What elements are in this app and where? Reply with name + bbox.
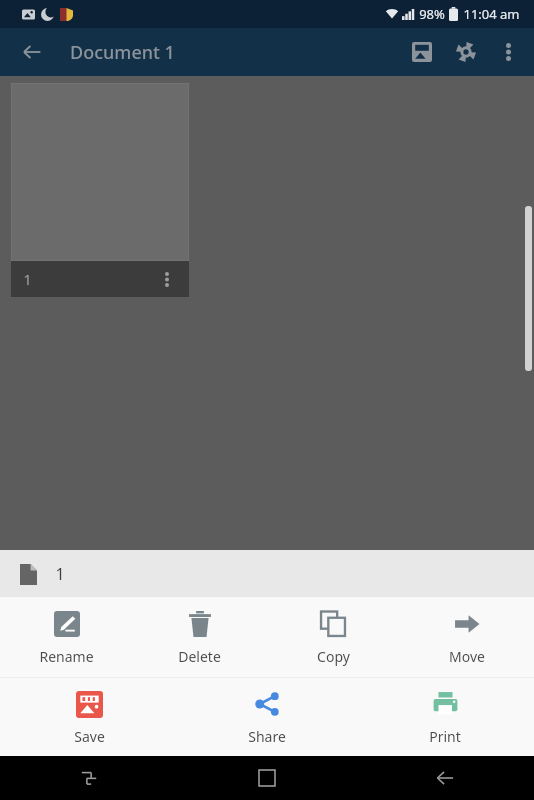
staticText: Copy bbox=[317, 647, 350, 666]
button[interactable]: Home bbox=[178, 756, 356, 800]
staticText: 11:04 am bbox=[463, 5, 520, 23]
staticText: Move bbox=[449, 647, 485, 666]
button[interactable]: Print bbox=[356, 678, 534, 756]
staticText: 98% bbox=[419, 5, 445, 23]
button[interactable]: Recents bbox=[0, 756, 178, 800]
button[interactable]: Back bbox=[12, 32, 52, 72]
button[interactable]: Share bbox=[178, 678, 356, 756]
staticText: Share bbox=[248, 727, 286, 746]
button[interactable]: Rename bbox=[0, 597, 133, 677]
button[interactable]: Move bbox=[400, 597, 534, 677]
button[interactable]: Page options bbox=[153, 265, 181, 293]
button[interactable]: Back bbox=[356, 756, 534, 800]
button[interactable]: 1 bbox=[11, 83, 189, 297]
staticText: Rename bbox=[39, 647, 94, 666]
button[interactable]: Save bbox=[0, 678, 178, 756]
button[interactable]: 1 bbox=[0, 550, 534, 597]
button[interactable]: Delete bbox=[133, 597, 266, 677]
staticText: Print bbox=[429, 727, 461, 746]
staticText: Save bbox=[74, 727, 105, 746]
button[interactable]: Copy bbox=[266, 597, 400, 677]
staticText: 1 bbox=[55, 563, 65, 585]
button[interactable]: More options bbox=[488, 32, 528, 72]
button[interactable]: Rotate bbox=[444, 30, 488, 74]
staticText: Delete bbox=[178, 647, 221, 666]
button[interactable]: Save as PDF image bbox=[400, 30, 444, 74]
staticText: 1 bbox=[23, 269, 32, 289]
staticText: Document 1 bbox=[70, 40, 175, 65]
